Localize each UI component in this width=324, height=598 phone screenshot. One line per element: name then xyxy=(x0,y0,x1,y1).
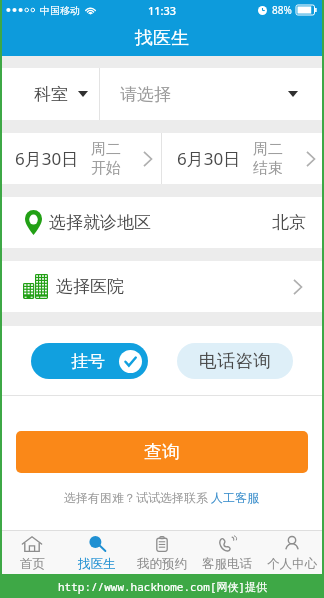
staticText: 查询 xyxy=(144,441,180,464)
staticText: http://www.hackhome.com[网侠]提供 xyxy=(58,579,267,594)
button[interactable]: 选择有困难？试试选择联系 人工客服 xyxy=(64,489,260,505)
staticText: 找医生 xyxy=(78,556,116,572)
button[interactable]: 找医生 xyxy=(64,531,129,574)
staticText: 11:33 xyxy=(148,3,177,18)
staticText: 客服电话 xyxy=(202,556,252,572)
button[interactable]: 个人中心 xyxy=(259,531,324,574)
button[interactable]: 首页 xyxy=(0,531,64,574)
staticText: 选择就诊地区 xyxy=(49,212,151,233)
staticText: 88% xyxy=(272,3,292,17)
staticText: 中国移动 xyxy=(40,4,80,17)
staticText: 科室 xyxy=(34,84,68,105)
staticText: 6月30日 xyxy=(177,147,241,170)
button[interactable]: 科室 xyxy=(0,68,99,120)
staticText: 电话咨询 xyxy=(199,350,271,373)
staticText: 开始 xyxy=(91,159,121,178)
button[interactable]: 6月30日 xyxy=(0,133,161,184)
button[interactable]: 6月30日 xyxy=(162,133,324,184)
staticText: 北京 xyxy=(272,212,306,233)
button[interactable]: 电话咨询 xyxy=(177,343,293,379)
button[interactable]: 我的预约 xyxy=(129,531,194,574)
staticText: 找医生 xyxy=(135,27,189,50)
button[interactable]: 选择医院 xyxy=(0,261,324,312)
staticText: 周二 xyxy=(91,140,121,159)
button[interactable]: 请选择 xyxy=(100,68,324,120)
button[interactable]: 选择就诊地区 xyxy=(0,197,324,248)
button[interactable]: 挂号 xyxy=(31,343,148,379)
staticText: 个人中心 xyxy=(267,556,317,572)
staticText: 我的预约 xyxy=(137,556,187,572)
staticText: 选择医院 xyxy=(56,276,124,297)
staticText: 请选择 xyxy=(120,84,171,105)
staticText: 6月30日 xyxy=(15,147,79,170)
button[interactable]: 查询 xyxy=(16,431,308,473)
staticText: 周二 xyxy=(253,140,283,159)
button[interactable]: 客服电话 xyxy=(194,531,259,574)
staticText: 首页 xyxy=(20,556,45,572)
staticText: 结束 xyxy=(253,159,283,178)
staticText: 挂号 xyxy=(71,351,105,372)
